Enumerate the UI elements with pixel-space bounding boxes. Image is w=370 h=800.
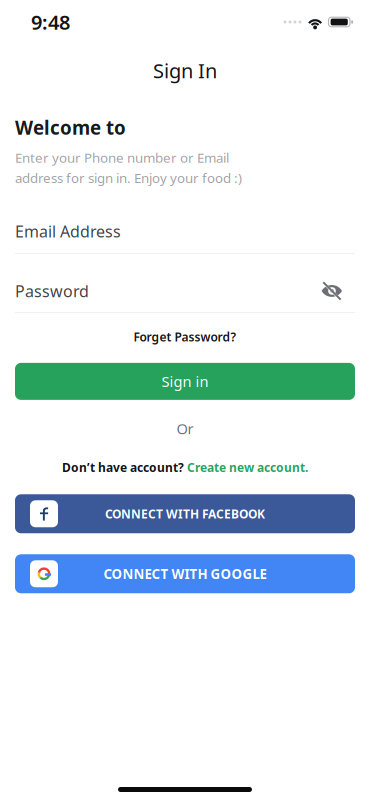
staticText: Create new account.	[187, 459, 308, 475]
button[interactable]: Show password	[321, 280, 343, 302]
staticText: Sign in	[161, 372, 208, 391]
staticText: 9:48	[31, 9, 70, 35]
staticText: Password	[15, 280, 89, 301]
button[interactable]: Sign in	[15, 363, 355, 400]
staticText: Forget Password?	[133, 329, 236, 345]
staticText: Don’t have account?	[62, 459, 184, 475]
staticText: CONNECT WITH GOOGLE	[103, 565, 266, 583]
staticText: CONNECT WITH FACEBOOK	[105, 506, 265, 522]
button[interactable]: CONNECT WITH GOOGLE	[15, 554, 355, 593]
staticText: Enter your Phone number or Email address…	[15, 149, 242, 187]
button[interactable]: Create new account.	[187, 459, 308, 475]
button[interactable]: CONNECT WITH FACEBOOK	[15, 494, 355, 533]
button[interactable]: Forget Password?	[15, 329, 355, 345]
staticText: Welcome to	[15, 115, 126, 140]
staticText: Email Address	[15, 221, 121, 242]
staticText: Sign In	[153, 57, 217, 84]
staticText: Or	[176, 419, 193, 438]
